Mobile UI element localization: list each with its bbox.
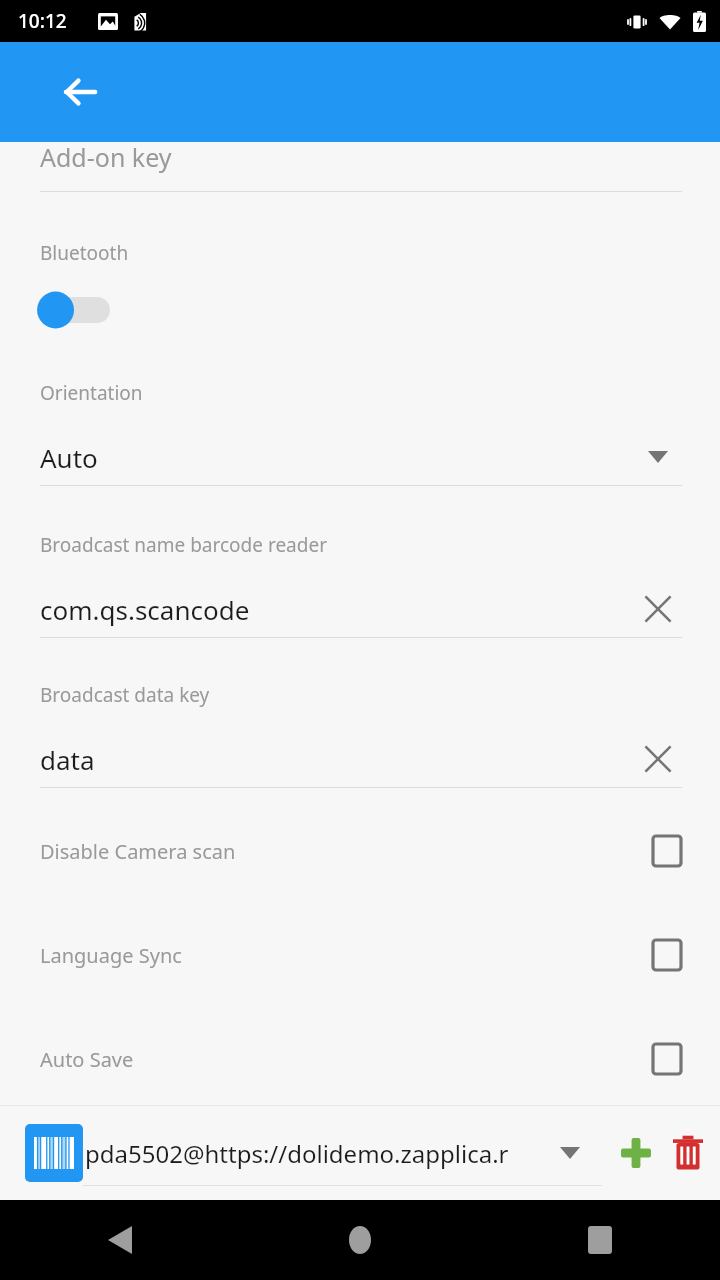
staticText: Orientation bbox=[40, 380, 143, 406]
staticText: com.qs.scancode bbox=[40, 592, 250, 627]
staticText: data bbox=[40, 742, 95, 777]
staticText: Broadcast data key bbox=[40, 682, 210, 708]
button[interactable]: Auto Save bbox=[0, 1038, 720, 1080]
staticText: Broadcast name barcode reader bbox=[40, 532, 328, 558]
button[interactable]: Scan barcode bbox=[25, 1124, 83, 1182]
button[interactable]: Bluetooth toggle bbox=[38, 288, 118, 332]
staticText: Bluetooth bbox=[40, 240, 129, 266]
button[interactable]: Auto bbox=[0, 428, 720, 486]
button[interactable]: Add bbox=[608, 1125, 664, 1181]
staticText: Disable Camera scan bbox=[40, 838, 236, 865]
staticText: Add-on key bbox=[40, 140, 172, 174]
button[interactable]: Home bbox=[328, 1208, 392, 1272]
staticText: pda5502@https://dolidemo.zapplica.r bbox=[85, 1137, 509, 1170]
button[interactable]: Back bbox=[88, 1208, 152, 1272]
button[interactable]: Clear Broadcast name barcode reader bbox=[634, 585, 682, 633]
button[interactable]: Clear Broadcast data key bbox=[634, 735, 682, 783]
button[interactable]: Disable Camera scan bbox=[0, 830, 720, 872]
button[interactable]: Back bbox=[52, 64, 108, 120]
staticText: Auto bbox=[40, 440, 98, 475]
button[interactable]: pda5502@https://dolidemo.zapplica.r bbox=[83, 1106, 608, 1200]
button[interactable]: Language Sync bbox=[0, 934, 720, 976]
button[interactable]: Recent apps bbox=[568, 1208, 632, 1272]
button[interactable]: Delete bbox=[664, 1125, 712, 1181]
staticText: Language Sync bbox=[40, 942, 182, 969]
staticText: Auto Save bbox=[40, 1046, 134, 1073]
staticText: 10:12 bbox=[18, 8, 67, 34]
